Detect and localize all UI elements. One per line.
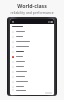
button[interactable] [10,74,54,79]
button[interactable]: Menu [11,20,14,23]
button[interactable] [10,34,54,39]
button[interactable] [10,89,54,91]
button[interactable] [10,69,54,74]
staticText: World-class [0,2,64,9]
button[interactable] [10,79,54,84]
button[interactable] [10,44,54,49]
button[interactable] [10,84,54,89]
button[interactable] [10,54,54,59]
button[interactable] [10,39,54,44]
staticText: reliability and performance [0,10,64,15]
button[interactable] [10,59,54,64]
button[interactable] [10,29,54,34]
button[interactable] [10,49,54,54]
button[interactable] [10,64,54,69]
